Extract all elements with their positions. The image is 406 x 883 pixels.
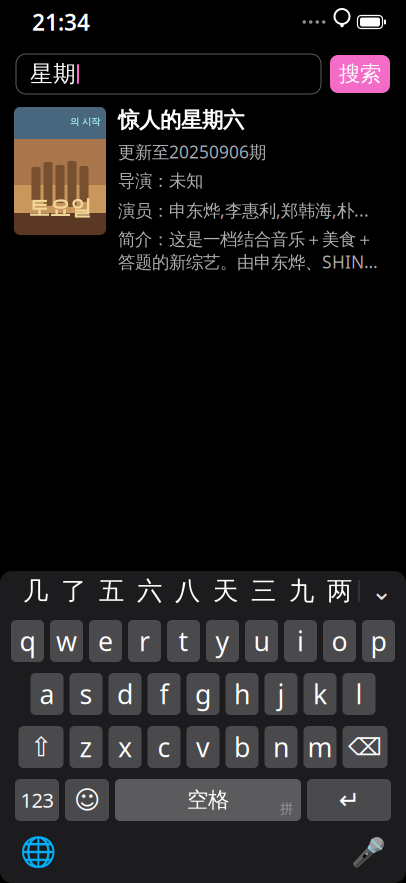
staticText: q (19, 623, 35, 659)
staticText: 几 (23, 575, 48, 606)
staticText: n (273, 729, 289, 765)
staticText: 导演：未知 (118, 170, 203, 191)
staticText: p (370, 623, 386, 659)
staticText: 123 (20, 787, 53, 813)
button[interactable]: 九 (282, 571, 320, 611)
button[interactable]: 了 (54, 571, 92, 611)
button[interactable]: 搜索 (330, 55, 390, 93)
staticText: 了 (61, 575, 86, 606)
button[interactable]: v (186, 726, 219, 768)
staticText: f (159, 676, 168, 712)
button[interactable]: f (147, 673, 180, 715)
button[interactable]: h (225, 673, 258, 715)
button[interactable]: e (89, 620, 122, 662)
staticText: 🌐 (19, 835, 56, 869)
staticText: 🎤 (350, 836, 385, 868)
button[interactable]: 의 시작 (0, 94, 406, 273)
button[interactable]: 三 (244, 571, 282, 611)
staticText: 八 (175, 575, 200, 606)
staticText: x (118, 729, 132, 765)
button[interactable]: 八 (168, 571, 206, 611)
button[interactable]: k (303, 673, 336, 715)
button[interactable]: y (206, 620, 239, 662)
staticText: 空格 (187, 787, 229, 813)
button[interactable]: Delete (342, 726, 387, 768)
button[interactable]: u (245, 620, 278, 662)
button[interactable]: 空格 (115, 779, 301, 821)
staticText: 星期 (30, 60, 76, 88)
button[interactable]: j (264, 673, 297, 715)
button[interactable]: Hide candidates (359, 571, 403, 611)
button[interactable]: Emoji (65, 779, 109, 821)
staticText: 의 시작 (70, 116, 100, 127)
staticText: c (157, 729, 170, 765)
button[interactable]: 天 (206, 571, 244, 611)
button[interactable]: p (362, 620, 395, 662)
staticText: l (355, 676, 362, 712)
staticText: t (178, 623, 188, 659)
staticText: i (297, 623, 304, 659)
button[interactable]: i (284, 620, 317, 662)
button[interactable]: 五 (92, 571, 130, 611)
staticText: ⇧ (30, 732, 52, 762)
staticText: 演员：申东烨,李惠利,郑韩海,朴娜莱,金起范,… (118, 198, 380, 222)
button[interactable]: 两 (320, 571, 358, 611)
staticText: a (39, 676, 54, 712)
staticText: 天 (213, 575, 238, 606)
button[interactable]: r (128, 620, 161, 662)
staticText: 惊人的星期六 (118, 107, 244, 133)
button[interactable]: x (108, 726, 141, 768)
staticText: 五 (99, 575, 124, 606)
staticText: o (331, 623, 347, 659)
button[interactable]: Dictation (346, 830, 390, 874)
staticText: ⌄ (371, 577, 392, 605)
button[interactable]: m (303, 726, 336, 768)
button[interactable]: g (186, 673, 219, 715)
staticText: u (253, 623, 269, 659)
button[interactable]: Return (307, 779, 391, 821)
staticText: ☺ (74, 786, 100, 814)
staticText: r (139, 623, 150, 659)
staticText: 两 (327, 575, 352, 606)
staticText: 拼 (280, 801, 293, 817)
button[interactable]: b (225, 726, 258, 768)
button[interactable]: n (264, 726, 297, 768)
staticText: 简介：这是一档结合音乐＋美食＋答题的新综艺。由申东烨、SHINee Key，李惠… (118, 229, 380, 273)
staticText: 21:34 (32, 7, 90, 37)
button[interactable]: a (30, 673, 63, 715)
button[interactable]: 几 (16, 571, 54, 611)
staticText: ↵ (338, 786, 359, 814)
staticText: 토요일 (28, 195, 91, 221)
staticText: 六 (137, 575, 162, 606)
button[interactable]: w (50, 620, 83, 662)
button[interactable]: 六 (130, 571, 168, 611)
button[interactable]: z (69, 726, 102, 768)
staticText: z (79, 729, 92, 765)
staticText: k (313, 676, 327, 712)
staticText: j (277, 676, 284, 712)
button[interactable]: l (342, 673, 375, 715)
staticText: 九 (289, 575, 314, 606)
staticText: v (196, 729, 210, 765)
staticText: 更新至20250906期 (118, 140, 266, 163)
staticText: 三 (251, 575, 276, 606)
staticText: m (307, 729, 332, 765)
button[interactable]: o (323, 620, 356, 662)
staticText: b (234, 729, 250, 765)
staticText: w (56, 623, 77, 659)
staticText: s (79, 676, 92, 712)
button[interactable]: 123 (15, 779, 59, 821)
button[interactable]: c (147, 726, 180, 768)
staticText: g (195, 676, 211, 712)
button[interactable]: Shift (18, 726, 63, 768)
staticText: ⌫ (348, 733, 382, 761)
button[interactable]: Switch keyboard (16, 830, 60, 874)
staticText: 搜索 (339, 61, 381, 87)
button[interactable]: q (11, 620, 44, 662)
button[interactable]: s (69, 673, 102, 715)
staticText: h (234, 676, 250, 712)
staticText: e (98, 623, 113, 659)
staticText: d (117, 676, 133, 712)
button[interactable]: t (167, 620, 200, 662)
button[interactable]: d (108, 673, 141, 715)
